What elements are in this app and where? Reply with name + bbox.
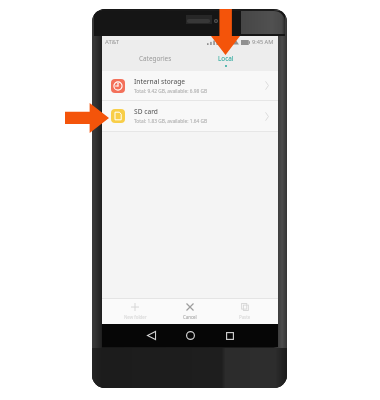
staticText: Paste	[239, 314, 251, 320]
button[interactable]: Home	[171, 324, 210, 347]
button[interactable]: Cancel	[162, 299, 217, 324]
button[interactable]: Categories	[102, 47, 190, 71]
staticText: AT&T	[105, 38, 119, 46]
staticText: Internal storage	[134, 77, 186, 86]
staticText: Total: 1.83 GB, available: 1.64 GB	[134, 118, 208, 125]
button[interactable]: SD card	[102, 101, 278, 131]
button[interactable]: Local	[190, 47, 278, 71]
button[interactable]: Internal storage	[102, 71, 278, 100]
button[interactable]: Paste	[217, 299, 272, 324]
staticText: New folder	[124, 314, 147, 320]
staticText: Total: 9.42 GB, available: 6.98 GB	[134, 88, 208, 95]
button[interactable]: Recents	[210, 324, 249, 347]
staticText: Categories	[139, 54, 172, 63]
staticText: Local	[218, 54, 234, 63]
button[interactable]: New folder	[108, 299, 162, 324]
staticText: SD card	[134, 107, 158, 116]
staticText: 9:45 AM	[252, 38, 274, 46]
button[interactable]: Back	[131, 324, 171, 347]
staticText: Cancel	[183, 314, 197, 320]
